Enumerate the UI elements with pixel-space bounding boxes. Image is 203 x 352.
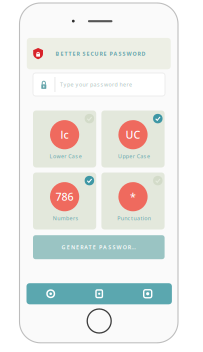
staticText: BETTER SECURE PASSWORD [56,50,146,57]
button[interactable]: 786 [33,172,96,229]
staticText: UC [125,128,140,142]
button[interactable]: GENERATE PASSWORD [33,235,165,259]
staticText: GENERATE PASSWORD [62,244,136,251]
button[interactable]: Vault [75,283,123,304]
staticText: Type your password here [60,81,132,88]
staticText: Punctuation [117,215,151,222]
staticText: lc [61,128,69,142]
button[interactable]: * [101,172,165,229]
button[interactable]: Settings [123,283,172,304]
button[interactable]: Generator [26,283,75,304]
button[interactable]: UC [101,110,165,167]
button[interactable]: lc [33,110,96,167]
staticText: Upper Case [118,153,150,160]
staticText: 786 [56,190,74,204]
staticText: Lower Case [50,153,82,160]
staticText: * [130,190,136,204]
staticText: Numbers [53,215,78,222]
